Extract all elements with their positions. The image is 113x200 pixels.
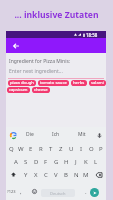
staticText: Die (26, 131, 34, 138)
button[interactable]: G (51, 155, 61, 168)
staticText: , (20, 188, 22, 196)
button[interactable]: Google Assistant (9, 131, 17, 139)
button[interactable]: Emoji (28, 185, 40, 198)
button[interactable]: Voice input (95, 131, 103, 139)
button[interactable]: A (11, 155, 21, 168)
staticText: Mit (78, 131, 86, 138)
staticText: P (99, 145, 103, 153)
button[interactable]: Shift (6, 168, 21, 181)
button[interactable]: , (15, 185, 26, 198)
button[interactable]: Ich (43, 127, 69, 142)
button[interactable]: L (91, 155, 101, 168)
staticText: capsicum (9, 87, 28, 93)
staticText: G (54, 158, 59, 166)
staticText: U (69, 145, 74, 153)
button[interactable]: herbs (71, 80, 87, 86)
staticText: J (75, 158, 77, 166)
staticText: W (18, 145, 24, 153)
staticText: Deutsch (50, 191, 66, 196)
staticText: F (44, 158, 48, 166)
button[interactable]: cheese (32, 87, 50, 93)
button[interactable]: Die (17, 127, 43, 142)
button[interactable]: J (71, 155, 81, 168)
button[interactable]: U (66, 142, 76, 155)
staticText: ... inklusive Zutaten (14, 9, 99, 21)
button[interactable]: B (61, 168, 71, 181)
staticText: S (24, 158, 28, 166)
button[interactable]: Send (90, 188, 99, 197)
staticText: A (14, 158, 18, 166)
button[interactable]: H (61, 155, 71, 168)
staticText: R (39, 145, 43, 153)
staticText: tomato sauce (40, 80, 67, 86)
button[interactable]: I (76, 142, 86, 155)
button[interactable]: V (51, 168, 61, 181)
staticText: ?123 (7, 189, 16, 194)
button[interactable]: X (31, 168, 41, 181)
staticText: N (74, 171, 79, 179)
button[interactable]: D (31, 155, 41, 168)
staticText: V (54, 171, 58, 179)
staticText: . (85, 188, 87, 196)
button[interactable]: C (41, 168, 51, 181)
button[interactable]: F (41, 155, 51, 168)
button[interactable]: K (81, 155, 91, 168)
button[interactable]: Z (56, 142, 66, 155)
staticText: Ingredient for Pizza Minis: (9, 58, 71, 65)
button[interactable]: P (96, 142, 106, 155)
staticText: pizza dough (10, 80, 34, 86)
staticText: X (34, 171, 38, 179)
button[interactable]: Q (6, 142, 16, 155)
staticText: Q (9, 145, 14, 153)
staticText: T (49, 145, 53, 153)
staticText: salami (91, 80, 104, 86)
staticText: L (94, 158, 98, 166)
staticText: D (34, 158, 39, 166)
staticText: cheese (34, 87, 48, 93)
staticText: M (83, 171, 89, 179)
button[interactable]: M (81, 168, 91, 181)
staticText: Ich (52, 131, 60, 138)
staticText: K (84, 158, 88, 166)
button[interactable]: S (21, 155, 31, 168)
button[interactable]: capsicum (7, 87, 30, 93)
button[interactable]: R (36, 142, 46, 155)
staticText: herbs (73, 80, 85, 86)
button[interactable]: Backspace (91, 168, 106, 181)
button[interactable]: pizza dough (8, 80, 36, 86)
button[interactable]: ?123 (6, 185, 17, 198)
staticText: Enter next ingredient... (9, 68, 63, 75)
staticText: Z (59, 145, 63, 153)
staticText: B (64, 171, 68, 179)
button[interactable]: O (86, 142, 96, 155)
button[interactable]: Deutsch (41, 189, 75, 197)
button[interactable]: E (26, 142, 36, 155)
staticText: 18:58 (86, 32, 98, 38)
button[interactable]: Y (21, 168, 31, 181)
staticText: O (89, 145, 94, 153)
staticText: Y (24, 171, 28, 179)
button[interactable]: . (80, 185, 92, 198)
button[interactable]: N (71, 168, 81, 181)
staticText: C (44, 171, 48, 179)
staticText: I (80, 145, 83, 153)
button[interactable]: Back (10, 40, 21, 51)
button[interactable]: W (16, 142, 26, 155)
button[interactable]: Mit (69, 127, 95, 142)
button[interactable]: T (46, 142, 56, 155)
button[interactable]: salami (89, 80, 106, 86)
staticText: H (64, 158, 69, 166)
button[interactable]: tomato sauce (38, 80, 69, 86)
staticText: E (29, 145, 33, 153)
